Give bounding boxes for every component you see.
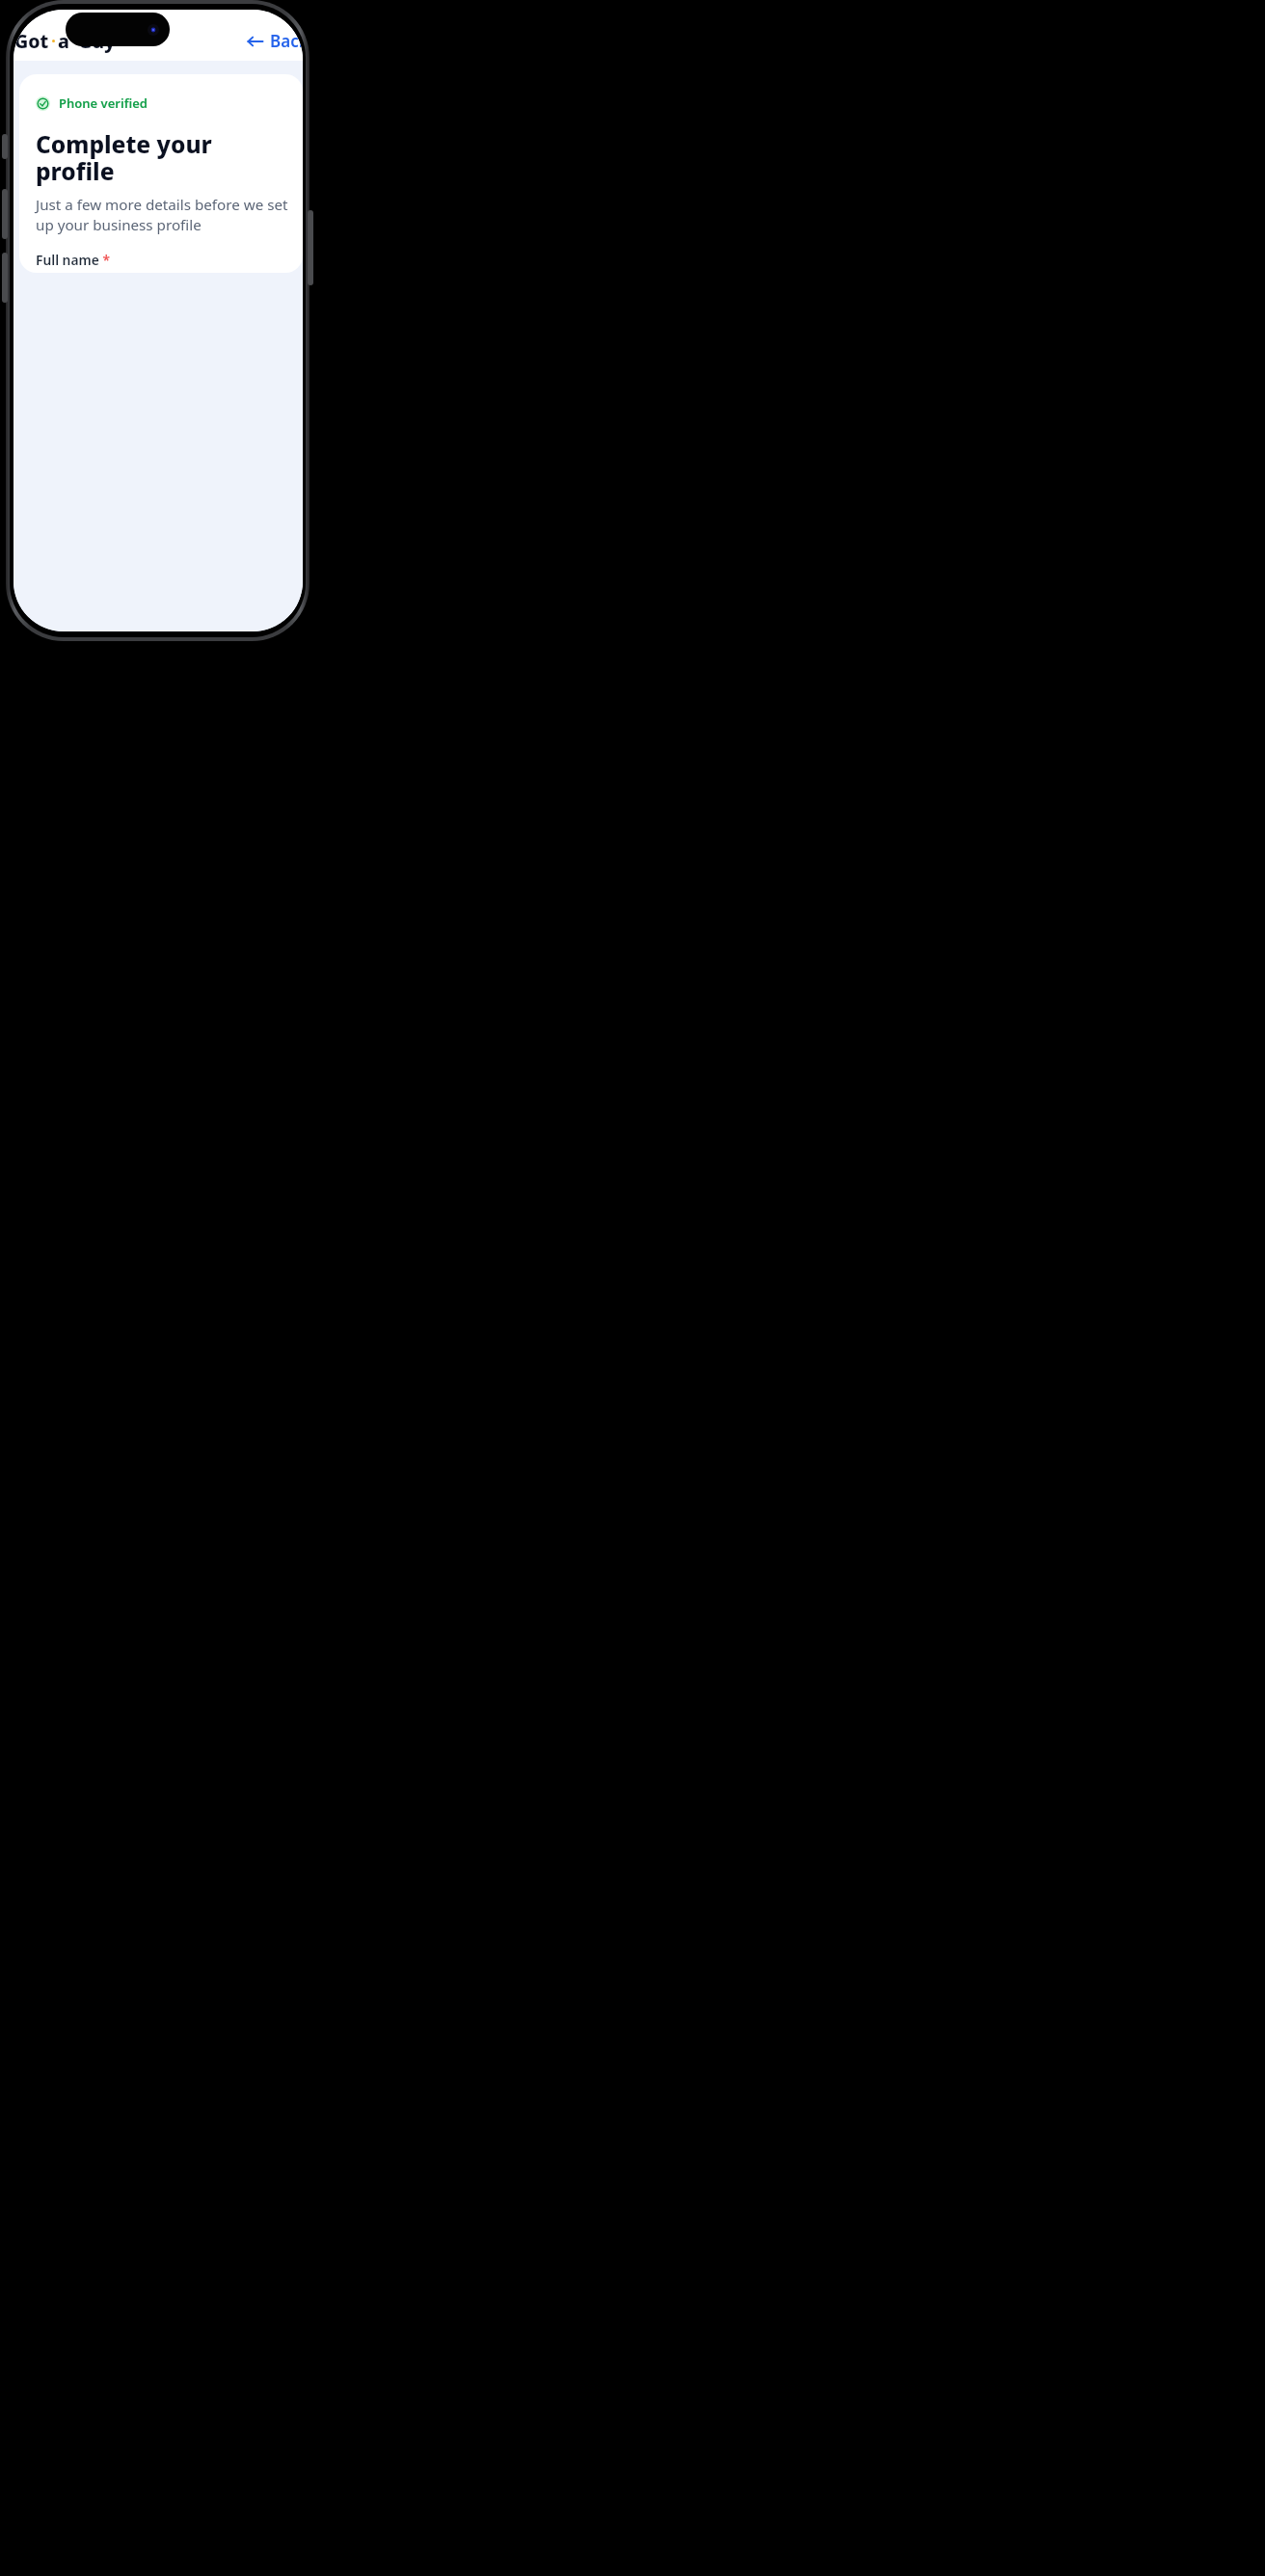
staticText: a bbox=[58, 28, 69, 54]
staticText: Back bbox=[270, 30, 303, 52]
staticText: Guy bbox=[78, 28, 116, 54]
button[interactable]: Back bbox=[244, 24, 303, 58]
staticText: Full name * bbox=[36, 251, 110, 269]
staticText: Phone verified bbox=[59, 94, 148, 112]
staticText: Got bbox=[14, 28, 49, 54]
staticText: Complete your profile bbox=[36, 128, 289, 187]
button[interactable]: Got bbox=[13, 23, 119, 59]
staticText: Just a few more details before we set up… bbox=[36, 195, 289, 235]
